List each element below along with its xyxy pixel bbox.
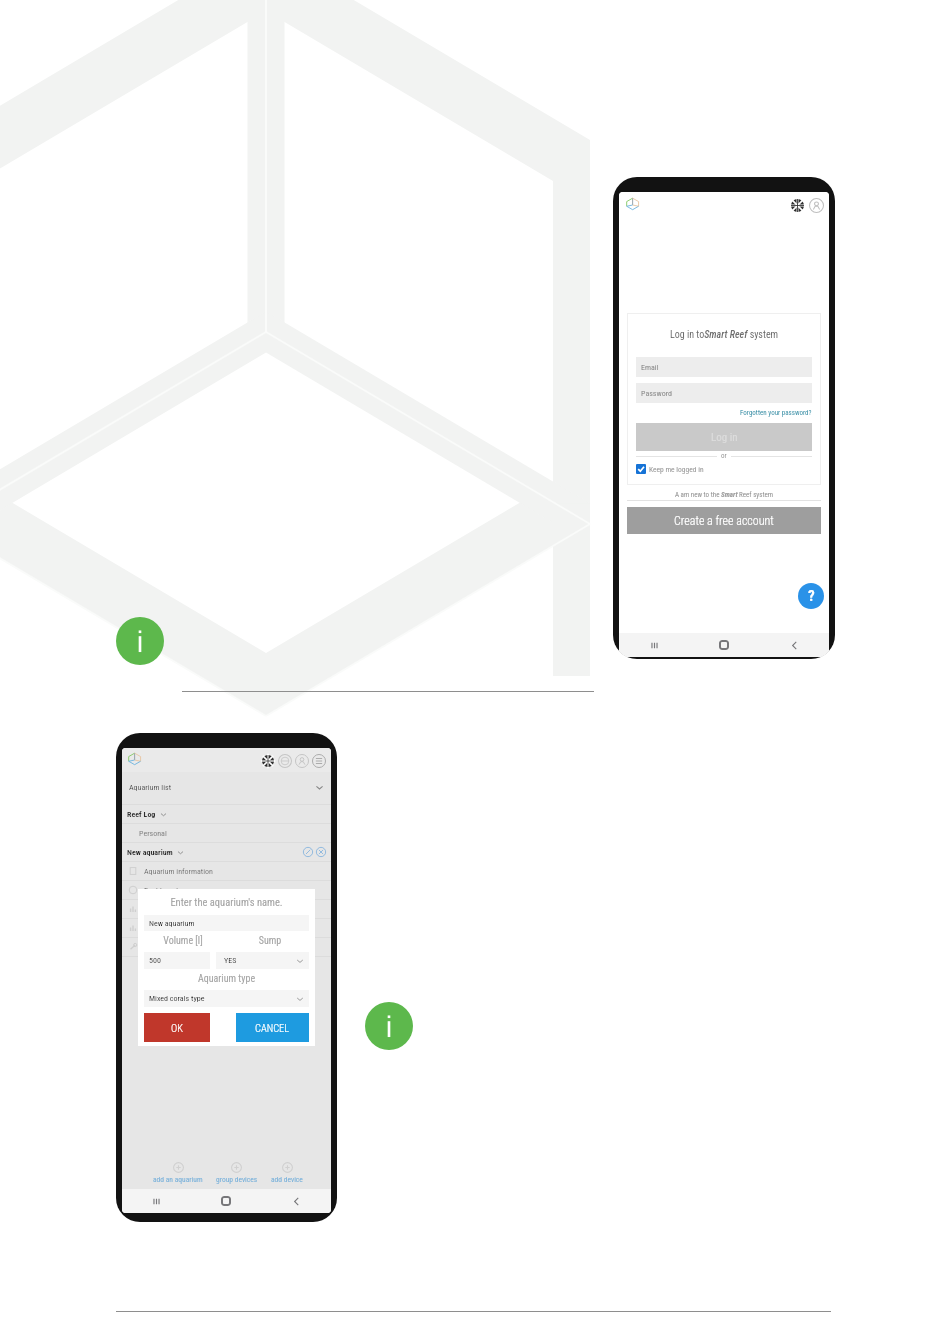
button[interactable]: Globe xyxy=(277,753,292,768)
button[interactable]: 500 xyxy=(149,952,205,969)
staticText: Aquarium list xyxy=(129,783,172,792)
button[interactable]: Aquarium information xyxy=(128,862,326,880)
button[interactable] xyxy=(128,919,326,937)
staticText: Aquarium information xyxy=(144,867,213,876)
button[interactable]: Language xyxy=(789,197,805,213)
button[interactable]: Password xyxy=(641,383,807,403)
button[interactable]: Recents xyxy=(122,1189,191,1213)
button[interactable]: Dashboard xyxy=(128,881,326,899)
staticText: Log in xyxy=(711,431,738,444)
staticText: Mixed corals type xyxy=(149,994,205,1003)
staticText: YES xyxy=(224,956,237,965)
staticText: Reef Log xyxy=(127,810,156,819)
button[interactable]: Reef Log xyxy=(127,805,326,823)
button[interactable]: New aquarium xyxy=(149,915,304,931)
button[interactable]: Aquarium list xyxy=(129,776,325,798)
button[interactable]: Account xyxy=(294,753,309,768)
button[interactable]: Home xyxy=(191,1189,261,1213)
button[interactable]: Information xyxy=(365,1002,413,1050)
staticText: Dashboard xyxy=(144,886,179,895)
staticText: add an aquarium xyxy=(153,1175,203,1184)
staticText: ? xyxy=(808,587,815,605)
button[interactable]: New aquarium xyxy=(127,843,326,861)
staticText: Create a free account xyxy=(674,514,774,528)
button[interactable]: add device xyxy=(263,1157,311,1189)
button[interactable]: Personal xyxy=(139,824,326,842)
staticText: 500 xyxy=(149,956,161,965)
button[interactable] xyxy=(128,938,326,956)
button[interactable] xyxy=(128,900,326,918)
button[interactable]: Home xyxy=(689,633,759,657)
button[interactable]: Language xyxy=(260,753,275,768)
staticText: Sump xyxy=(231,935,309,947)
button[interactable]: Information xyxy=(116,617,164,665)
button[interactable]: Help xyxy=(798,583,824,609)
button[interactable]: Menu xyxy=(311,753,326,768)
staticText: Password xyxy=(641,389,673,398)
staticText: New aquarium xyxy=(149,919,195,928)
staticText: New aquarium xyxy=(127,848,173,857)
staticText: Volume [l] xyxy=(144,935,222,947)
staticText: CANCEL xyxy=(255,1022,290,1034)
button[interactable]: Email xyxy=(641,357,807,377)
button[interactable]: Forgotten your password? xyxy=(636,403,812,423)
staticText: Log in toSmart Reef system xyxy=(627,329,821,341)
button[interactable]: Back xyxy=(261,1189,331,1213)
staticText: Personal xyxy=(139,829,167,838)
button[interactable]: group devices xyxy=(210,1157,263,1189)
button[interactable]: Recents xyxy=(619,633,689,657)
button[interactable]: Account xyxy=(808,197,824,213)
button[interactable]: add an aquarium xyxy=(146,1157,210,1189)
staticText: Keep me logged in xyxy=(649,465,704,474)
button[interactable]: CANCEL xyxy=(236,1013,309,1042)
staticText: A am new to the Smart Reef system xyxy=(627,491,821,499)
staticText: add device xyxy=(271,1175,303,1184)
staticText: Enter the aquarium's name. xyxy=(138,896,315,908)
button[interactable]: YES xyxy=(224,952,305,969)
staticText: OK xyxy=(171,1022,183,1034)
staticText: Aquarium type xyxy=(138,973,315,985)
button[interactable]: Keep me logged in xyxy=(636,464,704,474)
staticText: or xyxy=(721,452,727,460)
button[interactable]: Back xyxy=(759,633,829,657)
button[interactable]: Create a free account xyxy=(627,507,821,534)
button[interactable]: Mixed corals type xyxy=(149,990,305,1007)
staticText: Email xyxy=(641,363,659,372)
button[interactable]: OK xyxy=(144,1013,210,1042)
staticText: group devices xyxy=(216,1175,258,1184)
staticText: Forgotten your password? xyxy=(740,409,812,417)
